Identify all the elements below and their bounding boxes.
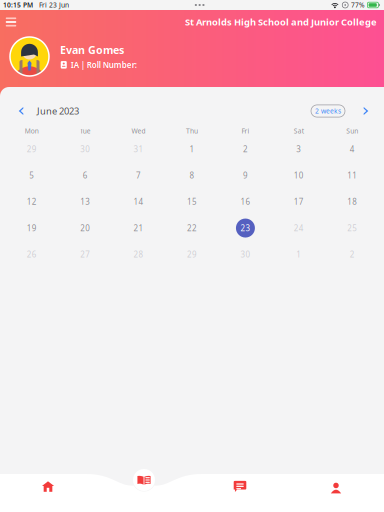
staticText: 9 bbox=[243, 170, 248, 181]
staticText: 2 weeks bbox=[315, 107, 341, 115]
staticText: Fri 23 Jun bbox=[39, 1, 69, 9]
staticText: Sun bbox=[346, 127, 358, 135]
staticText: 30 bbox=[80, 144, 90, 154]
staticText: 21 bbox=[134, 223, 144, 233]
staticText: 26 bbox=[27, 249, 37, 260]
button[interactable]: Menu bbox=[0, 13, 22, 31]
button[interactable]: Next month bbox=[356, 100, 376, 122]
staticText: 10 bbox=[294, 170, 304, 181]
staticText: 77% bbox=[351, 1, 365, 9]
staticText: Mon bbox=[25, 127, 39, 135]
staticText: 16 bbox=[240, 196, 250, 207]
staticText: Fri bbox=[241, 127, 249, 135]
staticText: 8 bbox=[189, 170, 194, 181]
button[interactable]: Home bbox=[0, 466, 96, 512]
staticText: St Arnolds High School and Junior Colleg… bbox=[185, 16, 377, 28]
staticText: 27 bbox=[80, 249, 90, 260]
staticText: 2 bbox=[350, 249, 355, 260]
staticText: 12 bbox=[27, 196, 37, 207]
button[interactable]: 2 weeks bbox=[311, 105, 345, 117]
staticText: Thu bbox=[186, 127, 198, 135]
staticText: IA | Roll Number: bbox=[71, 59, 137, 70]
staticText: 10:15 PM bbox=[3, 1, 33, 9]
staticText: 13 bbox=[80, 196, 90, 207]
staticText: 1 bbox=[189, 144, 194, 154]
staticText: 18 bbox=[347, 196, 357, 207]
staticText: 30 bbox=[240, 249, 250, 260]
staticText: 15 bbox=[187, 196, 197, 207]
staticText: 6 bbox=[83, 170, 88, 181]
staticText: 17 bbox=[294, 196, 304, 207]
button[interactable]: Previous month bbox=[11, 100, 31, 122]
staticText: 7 bbox=[136, 170, 141, 181]
staticText: 29 bbox=[27, 144, 37, 154]
button[interactable]: Diary bbox=[96, 466, 192, 512]
staticText: Tue bbox=[80, 127, 91, 135]
staticText: Evan Gomes bbox=[60, 43, 124, 57]
staticText: 22 bbox=[187, 223, 197, 233]
staticText: 14 bbox=[134, 196, 144, 207]
staticText: Wed bbox=[132, 127, 146, 135]
staticText: 2 bbox=[243, 144, 248, 154]
staticText: 19 bbox=[27, 223, 37, 233]
staticText: June 2023 bbox=[37, 105, 79, 117]
staticText: 23 bbox=[240, 223, 250, 233]
staticText: 31 bbox=[134, 144, 144, 154]
button[interactable]: Profile bbox=[288, 466, 384, 512]
staticText: 20 bbox=[80, 223, 90, 233]
staticText: 25 bbox=[347, 223, 357, 233]
button[interactable]: Messages bbox=[192, 466, 288, 512]
staticText: 28 bbox=[134, 249, 144, 260]
staticText: 24 bbox=[294, 223, 304, 233]
staticText: 4 bbox=[350, 144, 355, 154]
staticText: 5 bbox=[29, 170, 34, 181]
staticText: 3 bbox=[296, 144, 301, 154]
staticText: 11 bbox=[347, 170, 357, 181]
staticText: Sat bbox=[294, 127, 304, 135]
staticText: 29 bbox=[187, 249, 197, 260]
staticText: 1 bbox=[296, 249, 301, 260]
